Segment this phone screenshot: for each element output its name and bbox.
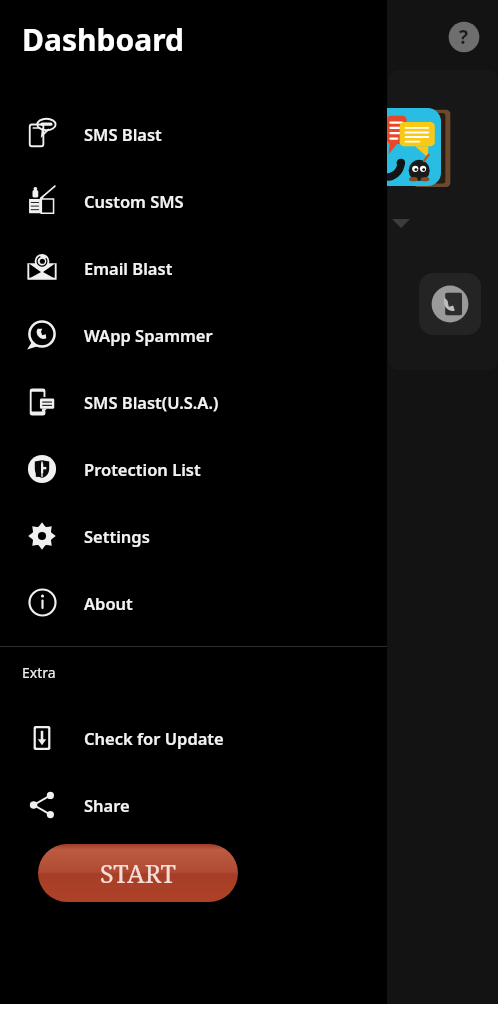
staticText: About <box>84 592 133 614</box>
staticText: Extra <box>22 663 56 682</box>
button[interactable]: Email Blast <box>0 234 387 301</box>
button[interactable]: Contacts <box>419 273 481 335</box>
staticText: ? <box>459 24 469 50</box>
button[interactable]: SMS Blast(U.S.A.) <box>0 368 387 435</box>
staticText: START <box>100 856 176 890</box>
staticText: Protection List <box>84 458 201 480</box>
staticText: Custom SMS <box>84 190 184 212</box>
staticText: SMS Blast <box>84 123 162 145</box>
staticText: SMS Blast(U.S.A.) <box>84 391 219 413</box>
button[interactable]: Custom SMS <box>0 167 387 234</box>
staticText: Email Blast <box>84 257 173 279</box>
button[interactable]: Share <box>0 771 387 838</box>
other: App icon <box>363 108 447 192</box>
staticText: WApp Spammer <box>84 324 213 346</box>
button[interactable]: WApp Spammer <box>0 301 387 368</box>
button[interactable]: About <box>0 569 387 636</box>
button[interactable]: Settings <box>0 502 387 569</box>
staticText: Share <box>84 794 130 816</box>
button[interactable]: Help <box>446 19 482 55</box>
button[interactable]: SMS Blast <box>0 100 387 167</box>
staticText: Dashboard <box>22 19 184 60</box>
button[interactable]: Protection List <box>0 435 387 502</box>
button[interactable]: Check for Update <box>0 704 387 771</box>
staticText: Settings <box>84 525 150 547</box>
staticText: Check for Update <box>84 727 224 749</box>
button[interactable]: START <box>38 844 238 902</box>
